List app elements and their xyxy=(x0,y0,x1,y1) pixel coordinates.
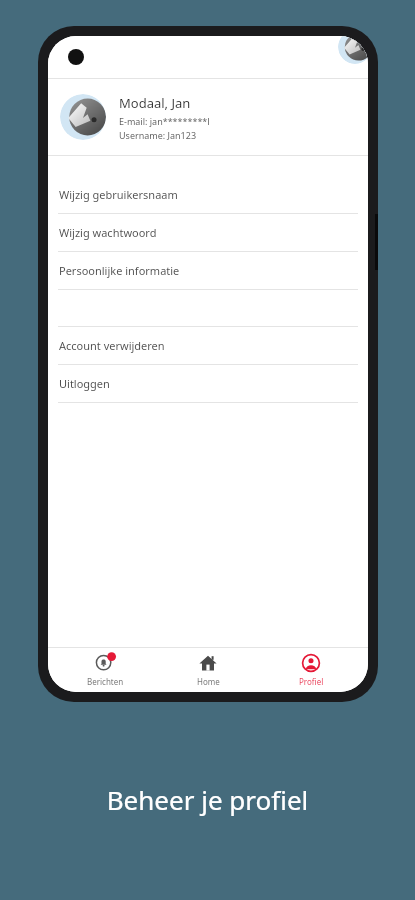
staticText: Wijzig gebruikersnaam xyxy=(59,187,178,202)
button[interactable]: Account xyxy=(338,36,368,64)
button[interactable]: Wijzig wachtwoord xyxy=(48,214,368,252)
other: Profiel xyxy=(301,653,321,673)
staticText: Modaal, Jan xyxy=(119,94,191,112)
button[interactable]: Modaal, Jan xyxy=(48,79,368,155)
staticText: Persoonlijke informatie xyxy=(59,263,180,278)
button[interactable]: Berichten xyxy=(59,648,151,692)
staticText: Wijzig wachtwoord xyxy=(59,225,157,240)
staticText: E-mail: jan*********l xyxy=(119,115,210,127)
button[interactable]: Profiel xyxy=(265,648,357,692)
button[interactable]: Wijzig gebruikersnaam xyxy=(48,176,368,214)
staticText: Profiel xyxy=(299,676,324,687)
staticText: Berichten xyxy=(87,676,124,687)
button[interactable]: Home xyxy=(162,648,254,692)
staticText: Beheer je profiel xyxy=(0,782,415,817)
button[interactable]: Account verwijderen xyxy=(48,327,368,365)
staticText: Uitloggen xyxy=(59,376,110,391)
other: Home xyxy=(198,653,218,673)
staticText: Account verwijderen xyxy=(59,338,165,353)
staticText: Home xyxy=(197,676,220,687)
staticText: Username: Jan123 xyxy=(119,129,197,141)
button[interactable]: Persoonlijke informatie xyxy=(48,252,368,290)
button[interactable]: Uitloggen xyxy=(48,365,368,403)
other: Berichten xyxy=(95,653,115,673)
